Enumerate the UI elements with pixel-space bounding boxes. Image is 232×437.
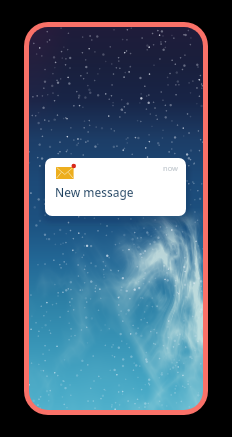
button[interactable]: now — [45, 158, 186, 216]
staticText: now — [163, 163, 178, 173]
staticText: New message — [55, 184, 134, 200]
